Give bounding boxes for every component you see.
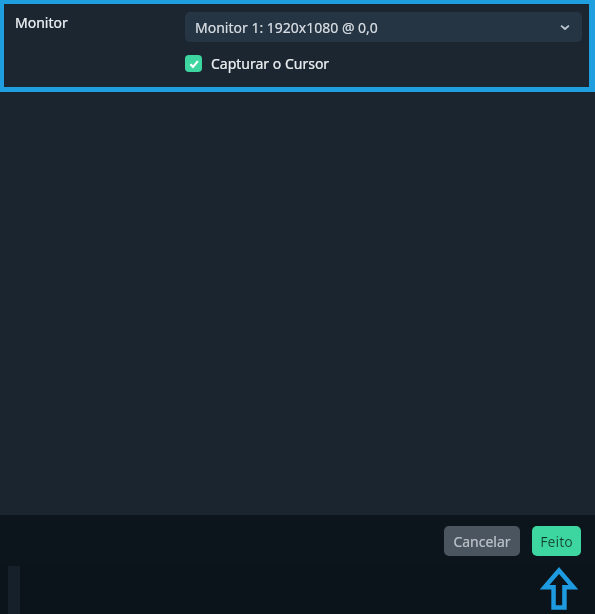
button[interactable]: Feito: [532, 526, 581, 556]
staticText: Cancelar: [453, 532, 511, 551]
button[interactable]: Cancelar: [444, 526, 520, 556]
button[interactable]: Capturar o Cursor: [185, 51, 330, 75]
staticText: Monitor 1: 1920x1080 @ 0,0: [195, 18, 558, 37]
button[interactable]: Monitor 1: 1920x1080 @ 0,0: [185, 12, 582, 42]
staticText: Feito: [540, 532, 573, 551]
staticText: Capturar o Cursor: [211, 54, 330, 73]
other: Up arrow pointer: [543, 568, 575, 610]
staticText: Monitor: [15, 13, 68, 32]
